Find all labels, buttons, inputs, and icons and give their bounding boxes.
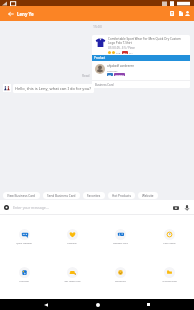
staticText: Past Activity — [163, 242, 176, 245]
button[interactable]: Hot Products — [108, 192, 135, 199]
staticText: Send Business Card — [47, 194, 76, 198]
button[interactable]: Business Card — [92, 81, 190, 88]
button[interactable]: All Email Drive — [145, 267, 194, 283]
button[interactable]: Camera — [171, 203, 180, 212]
staticText: Translate — [19, 280, 29, 283]
staticText: Comfortable Sport Wear For Men Quick Dry… — [108, 37, 188, 45]
button[interactable]: Emoji — [2, 203, 11, 212]
staticText: View Business Card — [7, 194, 36, 198]
staticText: trad1967 — [107, 69, 118, 72]
staticText: ahjabsdf zardeeren — [107, 64, 135, 68]
staticText: Website — [142, 194, 154, 198]
button[interactable]: Send Business Card — [43, 192, 80, 199]
staticText: Enter your message... — [13, 205, 49, 210]
button[interactable]: Recent apps — [143, 299, 154, 310]
staticText: Business Card — [95, 83, 114, 87]
staticText: Product — [94, 56, 106, 60]
button[interactable]: Website — [138, 192, 158, 199]
staticText: Emoticons — [115, 280, 126, 283]
button[interactable]: Home — [92, 299, 103, 310]
button[interactable]: Quick Message — [0, 229, 48, 245]
button[interactable]: Notes — [176, 6, 185, 21]
staticText: GS — [108, 73, 112, 76]
button[interactable]: Favorites — [83, 192, 105, 199]
staticText: 15:03 — [93, 24, 102, 29]
staticText: Leny Ye — [17, 11, 34, 17]
button[interactable]: Business Card — [96, 229, 145, 245]
button[interactable]: Get Latest Price — [48, 267, 96, 283]
staticText: Hot Products — [112, 194, 131, 198]
button[interactable]: Comfortable Sport Wear For Men Quick Dry… — [92, 35, 190, 88]
button[interactable]: Favorites — [48, 229, 96, 245]
button[interactable]: Hello, this is Leny, what can I do for y… — [13, 84, 94, 93]
button[interactable]: Past Activity — [145, 229, 194, 245]
button[interactable]: Translate — [0, 267, 48, 283]
staticText: Favorites — [87, 194, 101, 198]
staticText: Hello, this is Leny, what can I do for y… — [15, 86, 92, 91]
staticText: All Email Drive — [162, 280, 177, 283]
staticText: CN — [129, 51, 133, 54]
staticText: Business Card — [113, 242, 128, 245]
button[interactable]: Back — [3, 6, 18, 21]
button[interactable]: Profile — [183, 6, 192, 21]
staticText: Favorites — [67, 242, 77, 245]
staticText: CN — [123, 51, 127, 54]
button[interactable]: View Business Card — [3, 192, 40, 199]
staticText: US $ 0.05 - $ 5 / Piece — [108, 46, 135, 50]
staticText: Verified — [115, 73, 124, 76]
staticText: Get Latest Price — [64, 280, 81, 283]
button[interactable]: Voice message — [182, 203, 191, 212]
staticText: Quick Message — [16, 242, 32, 245]
button[interactable]: Orders — [167, 6, 176, 21]
button[interactable]: Emoticons — [96, 267, 145, 283]
button[interactable]: Back — [40, 299, 51, 310]
staticText: 3YR — [116, 51, 121, 54]
staticText: Read — [82, 74, 90, 78]
